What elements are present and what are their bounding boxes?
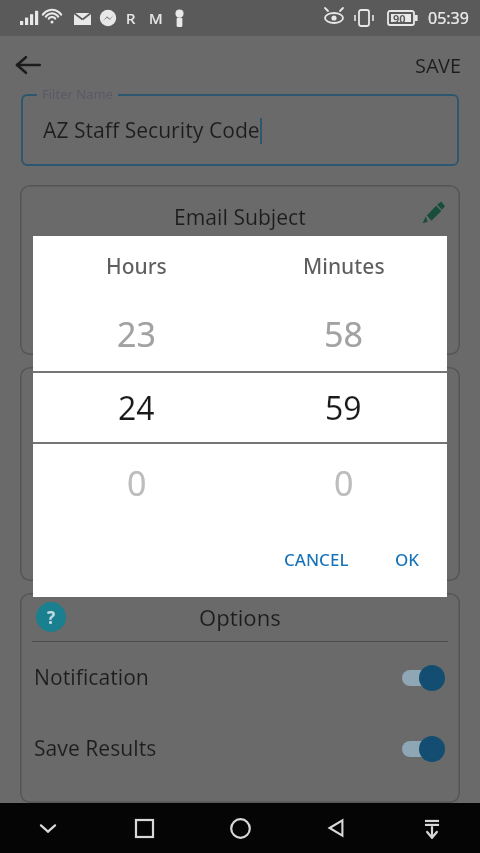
staticText: Email Subject	[174, 203, 306, 232]
button[interactable]: Download	[384, 803, 480, 853]
staticText: OK	[395, 548, 420, 571]
staticText: M	[149, 8, 163, 28]
staticText: AZ Staff Security Code	[43, 116, 260, 145]
button[interactable]: OK	[381, 538, 434, 581]
staticText: Minutes	[303, 252, 385, 281]
button[interactable]: Back	[0, 37, 56, 93]
button[interactable]: Back	[288, 803, 384, 853]
button[interactable]: AZ Staff Security Code	[21, 94, 459, 166]
button[interactable]: 0	[240, 444, 447, 522]
button[interactable]: Help	[34, 600, 68, 634]
staticText: 0	[127, 460, 147, 506]
staticText: 05:39	[428, 7, 469, 29]
button[interactable]: Edit	[416, 197, 450, 231]
staticText: R	[126, 8, 136, 28]
staticText: ?	[47, 606, 56, 629]
staticText: Options	[199, 602, 281, 632]
staticText: Filter Name	[42, 85, 113, 103]
button[interactable]: Home	[192, 803, 288, 853]
staticText: Notification	[34, 663, 149, 692]
button[interactable]: CANCEL	[270, 538, 363, 581]
staticText: 58	[324, 311, 363, 357]
staticText: CANCEL	[284, 548, 349, 571]
button[interactable]: Notification	[20, 642, 460, 713]
button[interactable]: 58	[240, 296, 447, 371]
button[interactable]: Hide keyboard	[0, 803, 96, 853]
staticText: 59	[325, 386, 362, 430]
button[interactable]: 59	[240, 373, 447, 442]
button[interactable]: Save Results	[20, 713, 460, 784]
staticText: Save Results	[34, 734, 157, 763]
staticText: 90	[393, 11, 406, 26]
button[interactable]: 0	[33, 444, 240, 522]
staticText: 24	[118, 386, 155, 430]
staticText: SAVE	[415, 52, 462, 79]
button[interactable]: 24	[33, 373, 240, 442]
staticText: 0	[334, 460, 354, 506]
button[interactable]: Recents	[96, 803, 192, 853]
staticText: 23	[117, 311, 156, 357]
staticText: Hours	[106, 252, 167, 281]
button[interactable]: SAVE	[401, 44, 476, 87]
button[interactable]: 23	[33, 296, 240, 371]
